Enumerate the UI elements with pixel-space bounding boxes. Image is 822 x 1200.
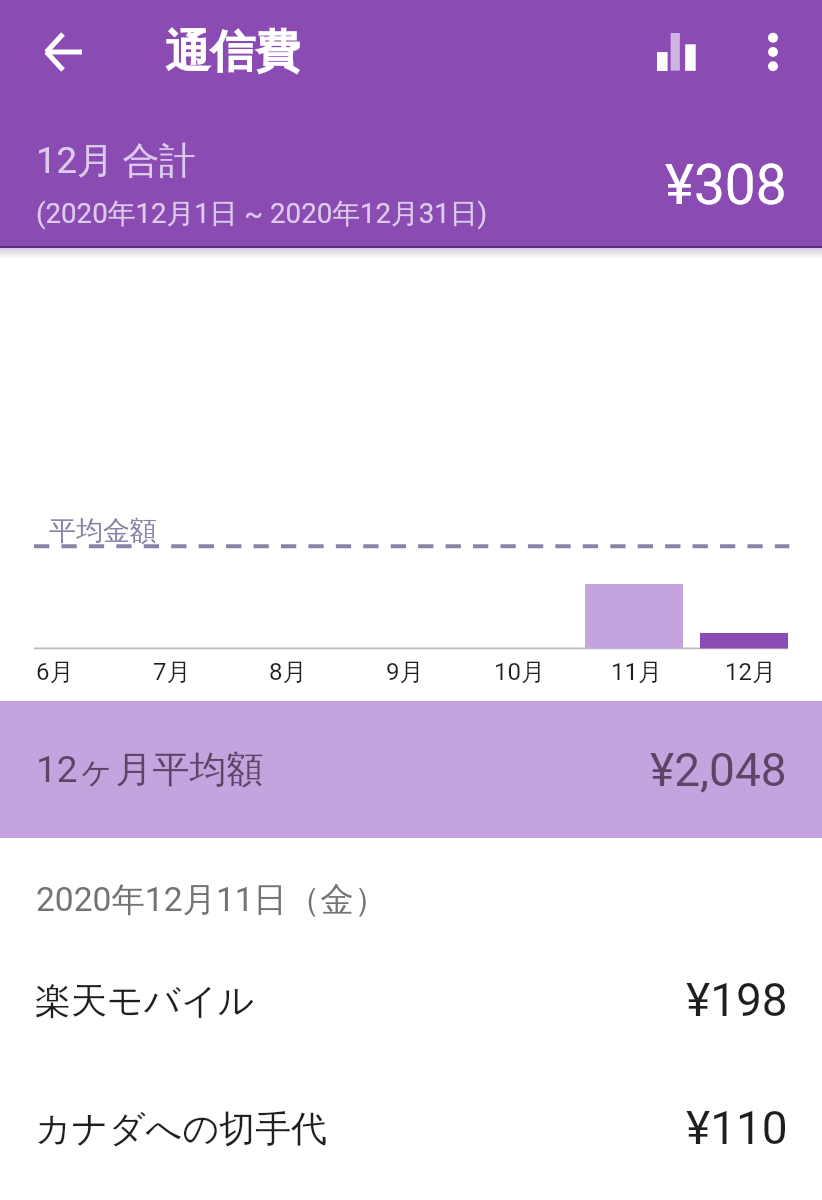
staticText: 12月 合計: [36, 138, 196, 184]
staticText: 11月: [611, 657, 662, 687]
staticText: カナダへの切手代: [35, 1106, 328, 1151]
staticText: 12月: [725, 657, 776, 687]
button[interactable]: 楽天モバイル: [0, 936, 822, 1064]
staticText: (2020年12月1日 ~ 2020年12月31日): [36, 196, 488, 231]
staticText: 平均金額: [49, 514, 157, 548]
button[interactable]: 12ヶ月平均額: [0, 701, 822, 838]
staticText: ¥110: [686, 1101, 788, 1155]
staticText: 楽天モバイル: [35, 978, 255, 1023]
staticText: 7月: [153, 657, 191, 687]
staticText: 6月: [36, 657, 74, 687]
staticText: 12ヶ月平均額: [36, 746, 264, 793]
staticText: ¥2,048: [650, 743, 787, 797]
staticText: 通信費: [165, 24, 300, 81]
staticText: 10月: [494, 657, 545, 687]
button[interactable]: Back: [25, 14, 101, 90]
staticText: 8月: [269, 657, 307, 687]
staticText: 9月: [386, 657, 424, 687]
button[interactable]: カナダへの切手代: [0, 1064, 822, 1192]
button[interactable]: 2020年12月11日（金）: [0, 838, 822, 936]
button[interactable]: More options: [734, 13, 812, 91]
staticText: ¥308: [665, 153, 787, 217]
staticText: ¥198: [686, 973, 788, 1027]
staticText: 2020年12月11日（金）: [36, 879, 388, 921]
button[interactable]: Statistics: [637, 13, 715, 91]
